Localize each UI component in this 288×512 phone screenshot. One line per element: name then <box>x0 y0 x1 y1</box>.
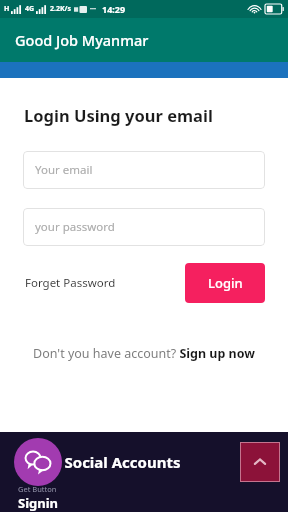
staticText: Using Social Accounts <box>18 452 181 472</box>
staticText: Your email <box>35 162 93 178</box>
staticText: Forget Password <box>25 275 116 291</box>
button[interactable]: Chat <box>14 438 62 486</box>
staticText: Signin <box>18 494 59 512</box>
button[interactable]: Your email <box>23 151 265 189</box>
button[interactable]: Login <box>185 263 265 303</box>
button[interactable]: Forget Password <box>23 271 118 295</box>
staticText: Login <box>208 274 243 292</box>
button[interactable]: Expand <box>240 442 280 482</box>
staticText: 4G <box>25 4 35 14</box>
staticText: Don't you have account? Sign up now <box>33 345 255 362</box>
staticText: Good Job Myanmar <box>15 30 149 50</box>
staticText: ··· <box>90 4 96 14</box>
staticText: H <box>4 4 10 14</box>
staticText: Login Using your email <box>24 104 213 126</box>
staticText: your password <box>35 219 115 235</box>
staticText: 14:29 <box>102 3 126 15</box>
button[interactable]: Don't you have account? Sign up now <box>28 345 260 362</box>
staticText: 2.2K/s <box>50 4 72 14</box>
button[interactable]: your password <box>23 208 265 246</box>
staticText: Get Button <box>18 484 57 494</box>
